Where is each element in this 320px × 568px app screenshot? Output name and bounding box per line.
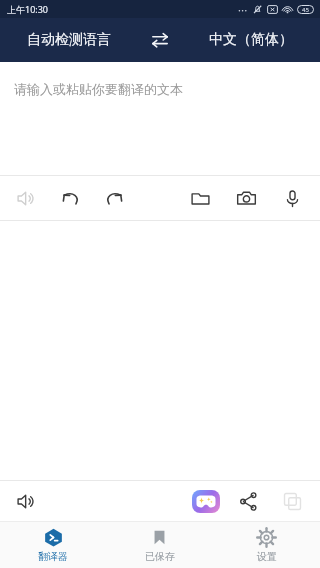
- button[interactable]: 翻译器: [0, 522, 106, 568]
- staticText: 请输入或粘贴你要翻译的文本: [14, 81, 183, 97]
- button[interactable]: Open file: [182, 180, 218, 216]
- staticText: 设置: [257, 550, 277, 563]
- button[interactable]: AI assistant: [188, 483, 224, 519]
- button[interactable]: 自动检测语言: [0, 18, 138, 62]
- button[interactable]: Camera: [228, 180, 264, 216]
- button[interactable]: Swap languages: [138, 18, 182, 62]
- button[interactable]: 设置: [213, 522, 320, 568]
- button[interactable]: 中文（简体）: [182, 18, 320, 62]
- staticText: 上午10:30: [7, 3, 49, 15]
- staticText: 自动检测语言: [27, 31, 111, 49]
- button[interactable]: Speak translation: [8, 483, 44, 519]
- staticText: 45: [302, 6, 309, 14]
- button[interactable]: Copy: [274, 483, 310, 519]
- staticText: 翻译器: [38, 550, 68, 563]
- staticText: 中文（简体）: [209, 31, 293, 49]
- button[interactable]: 已保存: [106, 522, 213, 568]
- staticText: 已保存: [145, 550, 175, 563]
- button[interactable]: Undo: [52, 180, 88, 216]
- button[interactable]: Voice input: [274, 180, 310, 216]
- button[interactable]: Speak: [8, 180, 44, 216]
- button[interactable]: 请输入或粘贴你要翻译的文本: [0, 62, 320, 175]
- button[interactable]: Redo: [96, 180, 132, 216]
- button[interactable]: Share: [230, 483, 266, 519]
